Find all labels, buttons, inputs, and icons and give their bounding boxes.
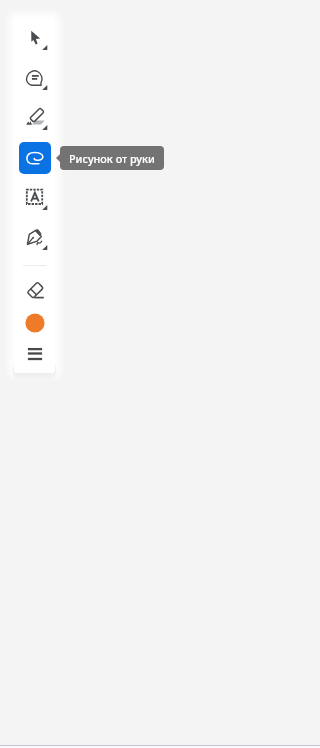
staticText: Рисунок от руки — [69, 151, 155, 166]
button[interactable]: Colour — [17, 305, 53, 341]
button[interactable]: Select tool — [17, 20, 53, 56]
button[interactable]: More options — [17, 336, 53, 372]
button[interactable]: Highlighter — [17, 100, 53, 136]
button[interactable]: Freehand drawing — [17, 140, 53, 176]
button[interactable]: Comment — [17, 60, 53, 96]
button[interactable]: Text box — [17, 180, 53, 216]
button[interactable]: Pen — [17, 220, 53, 256]
button[interactable]: Eraser — [17, 273, 53, 309]
